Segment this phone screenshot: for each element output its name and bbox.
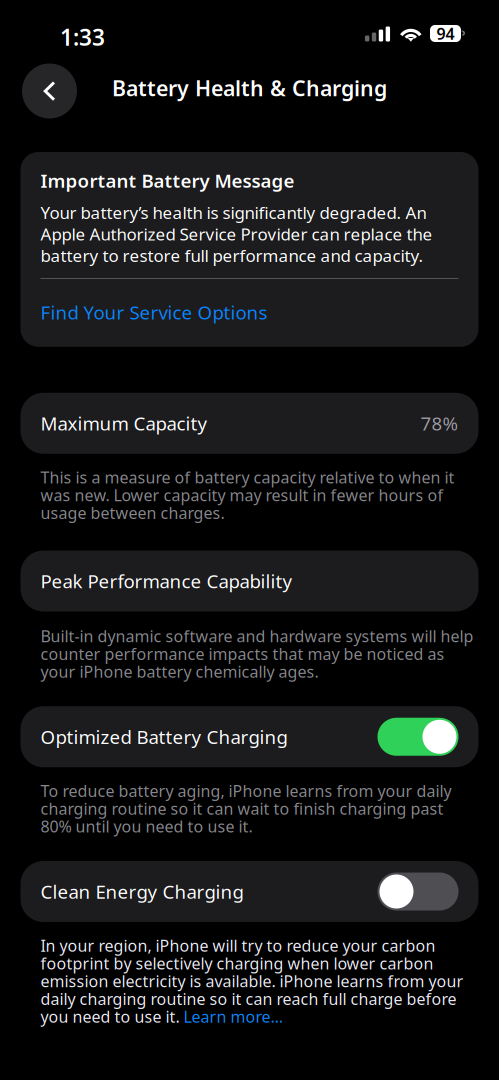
staticText: Clean Energy Charging — [40, 879, 243, 904]
staticText: 78% — [420, 411, 458, 436]
staticText: This is a measure of battery capacity re… — [40, 467, 454, 523]
staticText: 1:33 — [60, 22, 105, 52]
staticText: 94 — [436, 23, 454, 44]
staticText: Your battery’s health is significantly d… — [40, 201, 432, 267]
staticText: Find Your Service Options — [40, 300, 267, 325]
staticText: Built-in dynamic software and hardware s… — [40, 625, 473, 682]
button[interactable]: Back — [22, 63, 77, 118]
staticText: Battery Health & Charging — [112, 74, 387, 102]
staticText: In your region, iPhone will try to reduc… — [40, 935, 463, 1027]
button[interactable]: Optimized Battery Charging — [20, 706, 478, 767]
button[interactable]: Find Your Service Options — [40, 300, 267, 325]
staticText: Optimized Battery Charging — [40, 724, 287, 749]
staticText: Maximum Capacity — [40, 411, 207, 436]
staticText: To reduce battery aging, iPhone learns f… — [40, 780, 451, 837]
staticText: Important Battery Message — [40, 168, 294, 193]
button[interactable]: Clean Energy Charging — [20, 861, 478, 922]
staticText: Peak Performance Capability — [40, 569, 292, 593]
